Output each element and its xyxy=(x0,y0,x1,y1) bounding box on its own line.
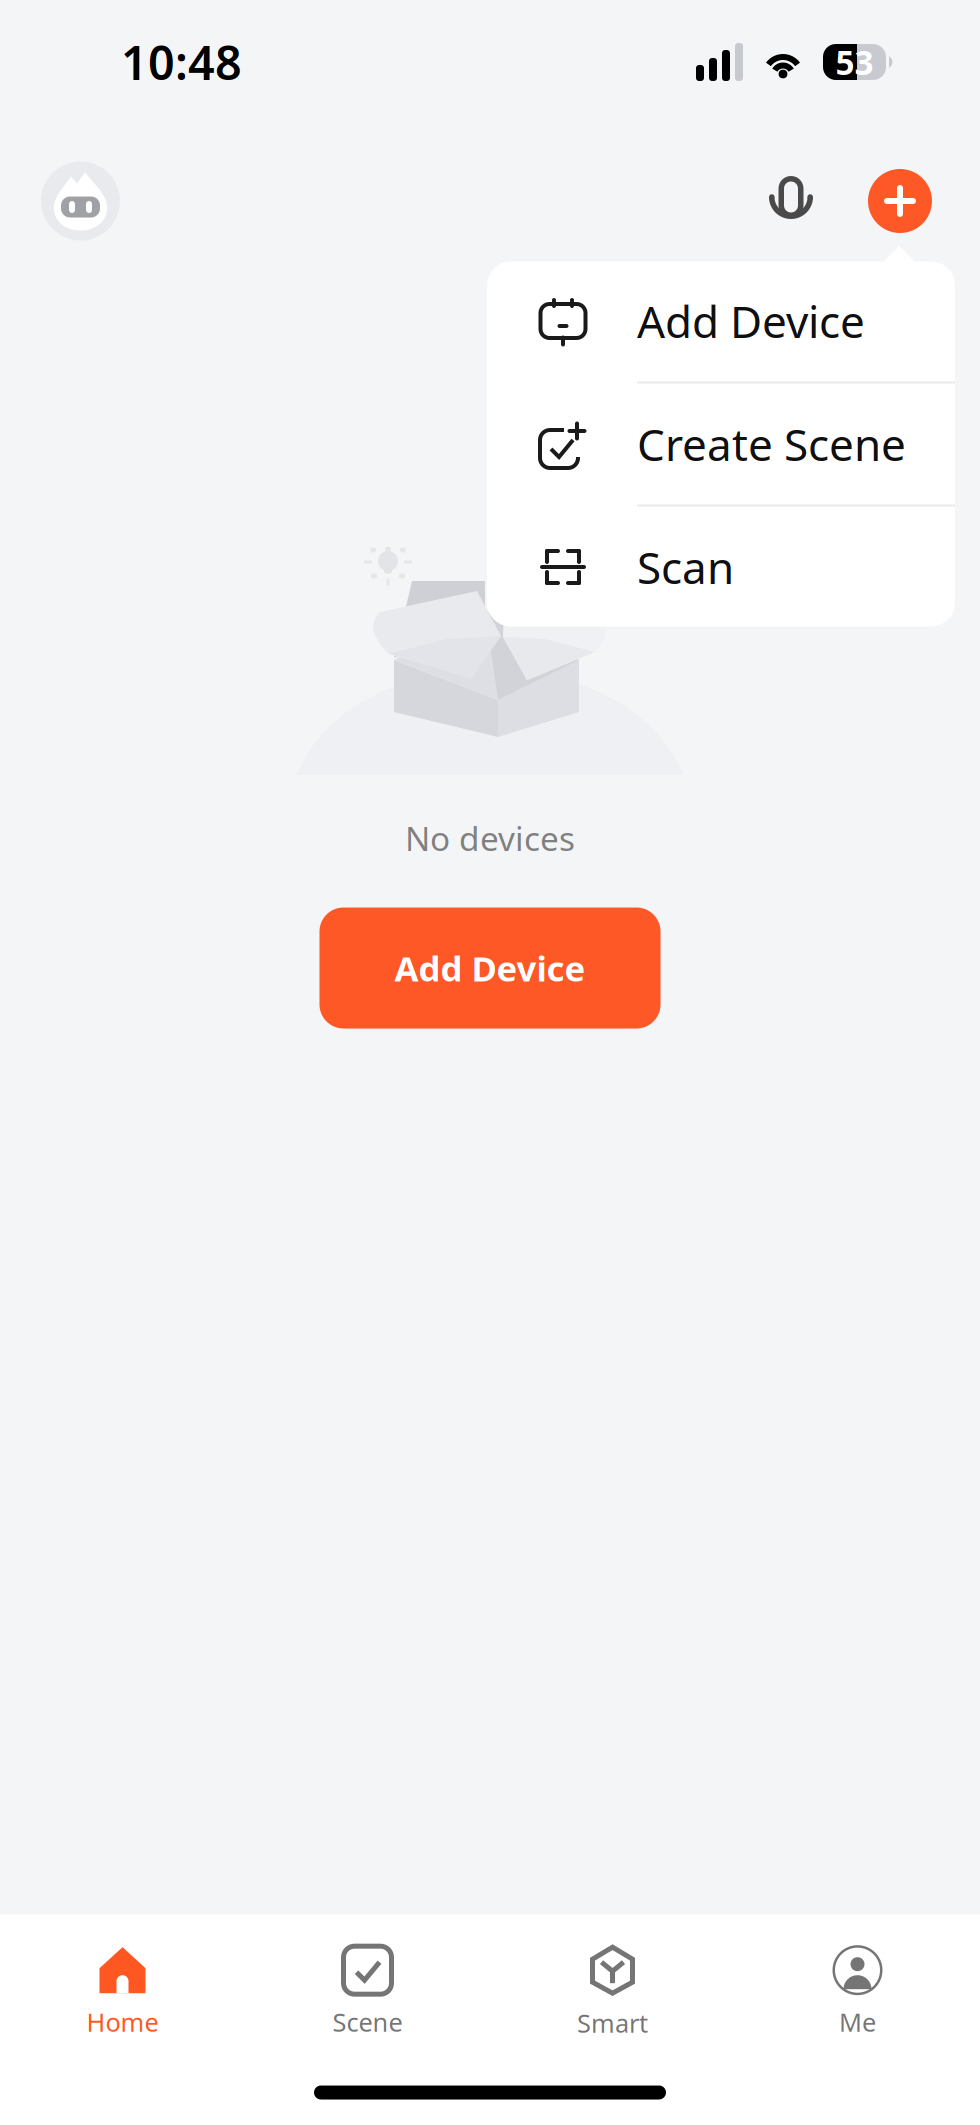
button[interactable]: Scene xyxy=(245,1938,490,2045)
staticText: 10:48 xyxy=(121,31,242,93)
button[interactable]: Voice input xyxy=(768,175,814,227)
staticText: Add Device xyxy=(637,292,865,350)
staticText: Scene xyxy=(332,2005,402,2039)
staticText: Home xyxy=(86,2005,158,2039)
staticText: 53 xyxy=(835,40,873,84)
staticText: Scan xyxy=(637,538,734,596)
staticText: Me xyxy=(839,2005,876,2039)
button[interactable]: Profile xyxy=(41,161,120,240)
staticText: Smart xyxy=(577,2006,648,2040)
button[interactable]: Create Scene xyxy=(487,383,955,504)
staticText: Add Device xyxy=(394,945,585,991)
staticText: No devices xyxy=(405,816,575,860)
staticText: Create Scene xyxy=(637,415,906,473)
button[interactable]: Scan xyxy=(487,506,955,627)
button[interactable]: Add xyxy=(868,169,932,233)
button[interactable]: Add Device xyxy=(487,260,955,381)
button[interactable]: Home xyxy=(0,1938,245,2045)
button[interactable]: Me xyxy=(735,1938,980,2045)
button[interactable]: Add Device xyxy=(319,907,660,1028)
button[interactable]: Smart xyxy=(490,1938,735,2045)
